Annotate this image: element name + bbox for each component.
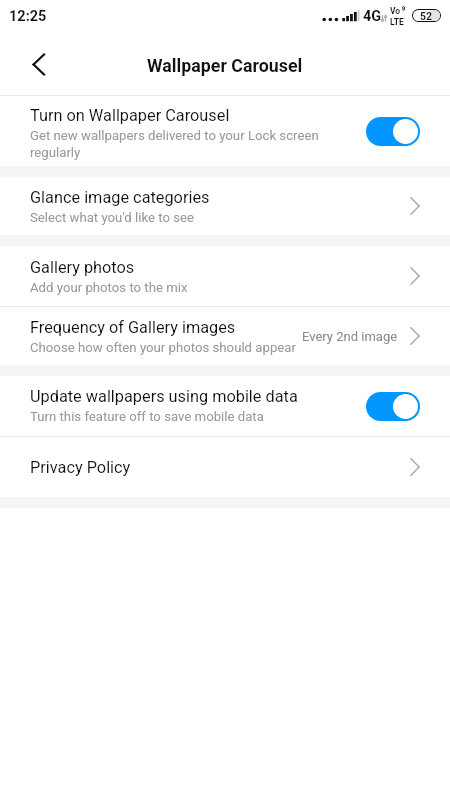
button[interactable]: Glance image categories bbox=[0, 177, 450, 235]
staticText: Turn this feature off to save mobile dat… bbox=[30, 409, 264, 424]
staticText: Glance image categories bbox=[30, 188, 210, 207]
staticText: Wallpaper Carousel bbox=[147, 55, 303, 76]
staticText: Turn on Wallpaper Carousel bbox=[30, 106, 230, 125]
staticText: 12:25 bbox=[9, 8, 47, 25]
button[interactable]: Update wallpapers using mobile data bbox=[0, 376, 450, 436]
staticText: Gallery photos bbox=[30, 258, 135, 277]
staticText: Every 2nd image bbox=[302, 329, 398, 344]
button[interactable]: Privacy Policy bbox=[0, 437, 450, 497]
staticText: Update wallpapers using mobile data bbox=[30, 387, 298, 406]
staticText: 52 bbox=[420, 10, 433, 20]
button[interactable]: Gallery photos bbox=[0, 246, 450, 306]
button[interactable]: Back bbox=[0, 36, 62, 95]
staticText: Select what you'd like to see bbox=[30, 210, 195, 225]
staticText: Frequency of Gallery images bbox=[30, 318, 236, 337]
staticText: Vo bbox=[390, 6, 401, 16]
staticText: Add your photos to the mix bbox=[30, 280, 188, 295]
staticText: Choose how often your photos should appe… bbox=[30, 340, 296, 355]
button[interactable]: Toggle bbox=[366, 117, 420, 146]
button[interactable]: Turn on Wallpaper Carousel bbox=[0, 96, 450, 166]
staticText: Privacy Policy bbox=[30, 458, 131, 477]
button[interactable]: Toggle bbox=[366, 392, 420, 421]
staticText: Get new wallpapers delivered to your Loc… bbox=[30, 128, 356, 160]
staticText: LTE bbox=[390, 17, 404, 27]
staticText: 4G bbox=[363, 8, 382, 25]
button[interactable]: Frequency of Gallery images bbox=[0, 307, 450, 365]
